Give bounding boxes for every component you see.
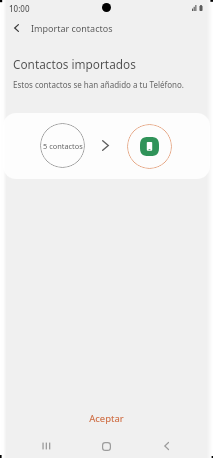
button[interactable]: Aceptar	[0, 407, 213, 429]
button[interactable]: Home	[92, 433, 120, 458]
staticText: Aceptar	[89, 412, 124, 425]
button[interactable]: 5 contactos	[40, 123, 85, 168]
button[interactable]: Recents	[32, 433, 60, 458]
staticText: Importar contactos	[31, 22, 113, 34]
button[interactable]: Telefono	[127, 124, 172, 169]
staticText: 5 contactos	[43, 141, 83, 151]
staticText: 10:00	[9, 3, 30, 14]
staticText: Contactos importados	[13, 56, 136, 72]
button[interactable]: Back	[152, 433, 180, 458]
button[interactable]: Back	[4, 16, 28, 40]
staticText: Estos contactos se han añadido a tu Telé…	[13, 79, 184, 90]
